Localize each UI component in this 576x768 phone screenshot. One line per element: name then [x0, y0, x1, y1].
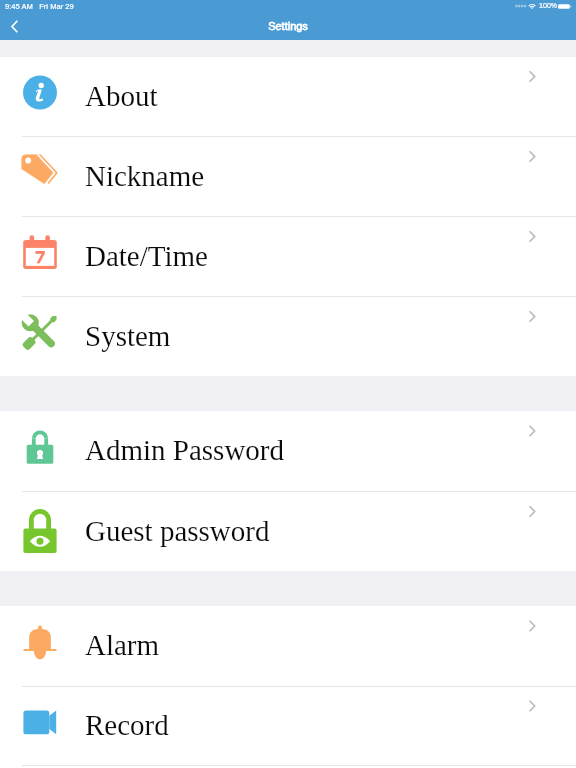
- button[interactable]: Alarm: [0, 606, 576, 686]
- staticText: Guest password: [85, 515, 270, 547]
- button[interactable]: System: [0, 297, 576, 376]
- staticText: 9:45 AM Fri Mar 29: [5, 2, 74, 10]
- staticText: 100%: [539, 2, 558, 10]
- staticText: Alarm: [85, 629, 160, 661]
- button[interactable]: Date/Time: [0, 217, 576, 296]
- staticText: Settings: [268, 20, 308, 32]
- staticText: System: [85, 320, 171, 352]
- button[interactable]: Admin Password: [0, 411, 576, 491]
- staticText: Admin Password: [85, 434, 284, 466]
- staticText: Record: [85, 709, 169, 741]
- button[interactable]: Guest password: [0, 492, 576, 571]
- staticText: Nickname: [85, 160, 205, 192]
- staticText: About: [85, 80, 158, 112]
- button[interactable]: Back: [0, 14, 32, 40]
- button[interactable]: Nickname: [0, 137, 576, 216]
- button[interactable]: Record: [0, 687, 576, 765]
- button[interactable]: About: [0, 57, 576, 136]
- staticText: Date/Time: [85, 240, 208, 272]
